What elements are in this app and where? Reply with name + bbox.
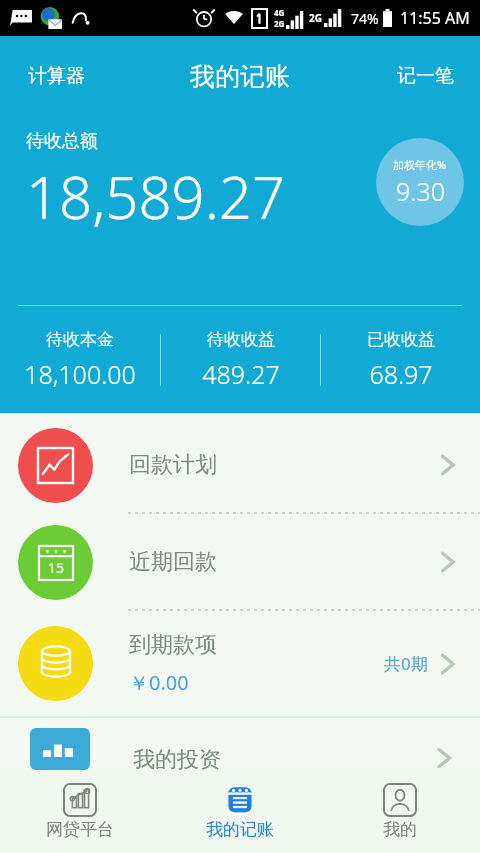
staticText: 到期款项 (129, 631, 217, 659)
staticText: 回款计划 (129, 451, 217, 479)
staticText: 18,100.00 (24, 357, 136, 391)
staticText: 74% (351, 9, 379, 28)
staticText: 已收收益 (367, 329, 435, 350)
staticText: 11:55 AM (400, 7, 470, 29)
staticText: 18,589.27 (26, 157, 286, 236)
button[interactable]: 计算器 (0, 58, 101, 94)
button[interactable]: 15 (0, 514, 480, 610)
button[interactable]: 我的记账 (160, 770, 320, 853)
staticText: 近期回款 (129, 548, 217, 576)
button[interactable]: 记一笔 (381, 58, 480, 94)
staticText: 待收总额 (26, 130, 98, 153)
staticText: ￥0.00 (129, 669, 189, 696)
staticText: 68.97 (369, 357, 433, 391)
staticText: 我的记账 (206, 819, 274, 840)
staticText: 489.27 (202, 357, 280, 391)
staticText: 4G (274, 7, 285, 18)
staticText: 9.30 (396, 174, 445, 208)
staticText: 共0期 (384, 652, 428, 675)
staticText: 待收本金 (46, 329, 114, 350)
button[interactable]: 加权年化% (376, 138, 464, 226)
button[interactable]: 回款计划 (0, 417, 480, 513)
staticText: 网贷平台 (46, 819, 114, 840)
button[interactable]: 我的投资 (0, 718, 480, 770)
button[interactable]: 网贷平台 (0, 770, 160, 853)
staticText: 2G (274, 18, 285, 29)
button[interactable]: 到期款项 (0, 611, 480, 716)
staticText: 我的投资 (133, 746, 221, 770)
staticText: 待收收益 (207, 329, 275, 350)
button[interactable]: 我的 (320, 770, 480, 853)
staticText: 15 (48, 558, 65, 577)
staticText: 我的记账 (190, 61, 290, 92)
staticText: 加权年化% (393, 157, 447, 172)
staticText: 2G (309, 11, 322, 25)
staticText: 我的 (383, 819, 417, 840)
